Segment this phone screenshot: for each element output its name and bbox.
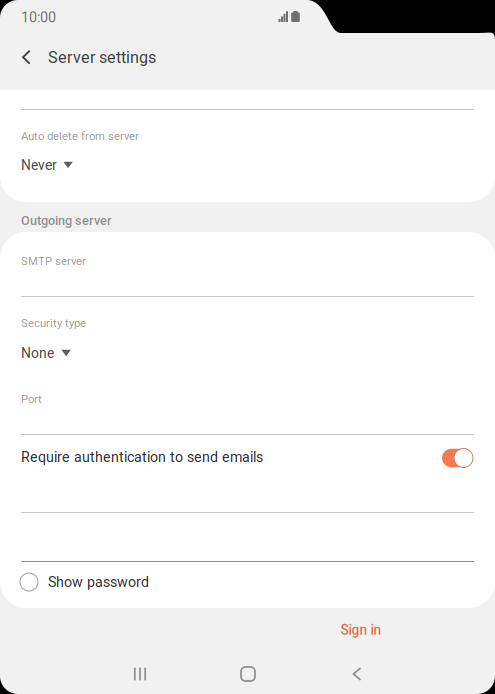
- staticText: Outgoing server: [21, 213, 111, 228]
- staticText: Show password: [48, 574, 149, 590]
- staticText: Sign in: [340, 622, 381, 638]
- staticText: Security type: [21, 316, 86, 330]
- button[interactable]: Back: [6, 35, 46, 79]
- staticText: Never: [21, 157, 57, 173]
- staticText: Auto delete from server: [21, 129, 139, 143]
- staticText: Port: [21, 392, 42, 406]
- staticText: Require authentication to send emails: [21, 449, 263, 465]
- button[interactable]: Recent apps: [109, 652, 171, 694]
- staticText: None: [21, 345, 54, 361]
- button[interactable]: Back: [326, 652, 388, 694]
- staticText: 10:00: [21, 9, 56, 26]
- button[interactable]: Sign in: [319, 610, 403, 650]
- button[interactable]: Require authentication to send emails: [0, 434, 495, 480]
- button[interactable]: Show password: [0, 560, 495, 604]
- staticText: SMTP server: [21, 254, 86, 268]
- button[interactable]: Home: [217, 652, 279, 694]
- button[interactable]: None: [0, 338, 495, 372]
- staticText: Server settings: [48, 48, 156, 67]
- button[interactable]: Never: [0, 150, 495, 184]
